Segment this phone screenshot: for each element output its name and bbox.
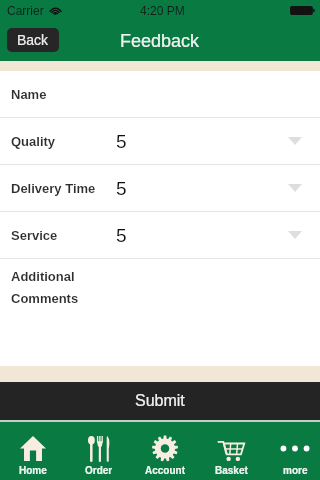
staticText: 5: [116, 225, 127, 246]
staticText: Feedback: [120, 31, 200, 51]
staticText: Home: [19, 465, 47, 476]
staticText: Account: [145, 465, 185, 476]
staticText: Order: [85, 465, 113, 476]
button[interactable]: Basket: [199, 422, 263, 480]
button[interactable]: Submit: [0, 382, 320, 420]
button[interactable]: Name: [0, 71, 320, 118]
button[interactable]: more: [263, 422, 320, 480]
staticText: Carrier: [7, 4, 44, 17]
staticText: Submit: [135, 392, 185, 410]
button[interactable]: Order: [67, 422, 131, 480]
staticText: Quality: [11, 134, 56, 149]
button[interactable]: Home: [1, 422, 65, 480]
staticText: Additional Comments: [11, 269, 79, 305]
button[interactable]: Account: [133, 422, 197, 480]
staticText: Name: [11, 87, 47, 102]
staticText: Delivery Time: [11, 181, 96, 196]
staticText: Service: [11, 228, 58, 243]
staticText: Basket: [215, 465, 248, 476]
staticText: 5: [116, 178, 127, 199]
button[interactable]: Quality: [0, 118, 320, 165]
staticText: 4:20 PM: [140, 4, 185, 17]
button[interactable]: Service: [0, 212, 320, 259]
staticText: more: [283, 465, 308, 476]
staticText: 5: [116, 131, 127, 152]
button[interactable]: Additional Comments: [0, 259, 320, 366]
button[interactable]: Back: [7, 28, 59, 52]
staticText: Back: [17, 32, 49, 48]
button[interactable]: Delivery Time: [0, 165, 320, 212]
